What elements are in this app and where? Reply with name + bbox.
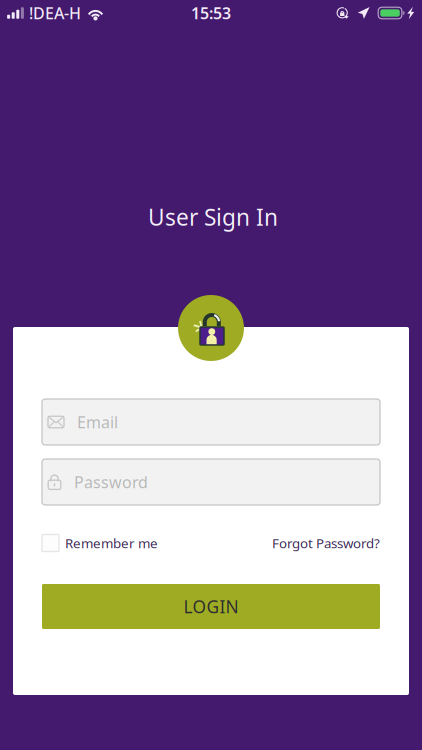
staticText: LOGIN	[183, 595, 238, 618]
staticText: 15:53	[191, 2, 231, 24]
button[interactable]: LOGIN	[42, 584, 380, 629]
button[interactable]: Remember me	[42, 534, 158, 552]
staticText: Forgot Password?	[272, 534, 380, 552]
staticText: !DEA-H	[29, 2, 81, 24]
staticText: User Sign In	[148, 202, 278, 232]
staticText: Email	[77, 411, 118, 433]
button[interactable]: Email	[42, 399, 380, 445]
staticText: Password	[74, 471, 148, 493]
button[interactable]: Forgot Password?	[272, 534, 380, 552]
button[interactable]: Password	[42, 459, 380, 505]
staticText: Remember me	[65, 534, 158, 552]
